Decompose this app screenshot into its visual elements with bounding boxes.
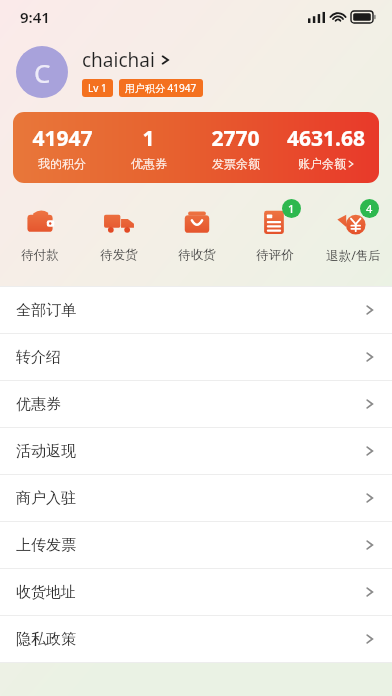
staticText: 用户积分 41947 [125, 81, 197, 95]
staticText: 账户余额 [298, 156, 346, 171]
staticText: 9:41 [20, 7, 50, 27]
staticText: 4 [366, 201, 373, 216]
staticText: 退款/售后 [326, 247, 381, 264]
staticText: 隐私政策 [16, 630, 76, 649]
staticText: Lv 1 [88, 81, 107, 95]
staticText: 优惠券 [16, 395, 61, 414]
staticText: 待评价 [256, 247, 294, 263]
button[interactable]: 上传发票 [0, 522, 392, 568]
button[interactable]: 全部订单 [0, 287, 392, 333]
button[interactable]: 待发货 [79, 201, 158, 265]
staticText: 待收货 [178, 247, 216, 263]
staticText: 商户入驻 [16, 489, 76, 508]
button[interactable]: 41947 [13, 112, 379, 183]
button[interactable]: 2770 [192, 124, 279, 171]
staticText: 活动返现 [16, 442, 76, 461]
staticText: 上传发票 [16, 536, 76, 555]
button[interactable]: 待付款 [0, 201, 79, 265]
staticText: 优惠券 [131, 156, 167, 171]
staticText: chaichai [82, 47, 155, 73]
staticText: 2770 [211, 124, 260, 153]
staticText: 我的积分 [38, 156, 86, 171]
staticText: 转介绍 [16, 348, 61, 367]
button[interactable]: 转介绍 [0, 334, 392, 380]
button[interactable]: 4 [314, 201, 392, 266]
staticText: 4631.68 [287, 124, 365, 153]
staticText: 41947 [32, 124, 93, 153]
button[interactable]: 41947 [19, 124, 105, 171]
button[interactable]: 优惠券 [0, 381, 392, 427]
button[interactable]: 待收货 [158, 201, 236, 265]
button[interactable]: 1 [105, 124, 192, 171]
staticText: 1 [288, 201, 295, 216]
staticText: 发票余额 [212, 156, 260, 171]
button[interactable]: 1 [236, 201, 314, 265]
staticText: 全部订单 [16, 301, 76, 320]
staticText: 收货地址 [16, 583, 76, 602]
staticText: 待发货 [100, 247, 138, 263]
staticText: C [34, 55, 51, 90]
button[interactable]: 隐私政策 [0, 616, 392, 662]
button[interactable]: C [16, 46, 376, 98]
button[interactable]: 收货地址 [0, 569, 392, 615]
button[interactable]: 4631.68 [279, 124, 373, 171]
button[interactable]: 商户入驻 [0, 475, 392, 521]
staticText: 待付款 [21, 247, 59, 263]
button[interactable]: 活动返现 [0, 428, 392, 474]
staticText: 1 [142, 124, 155, 153]
